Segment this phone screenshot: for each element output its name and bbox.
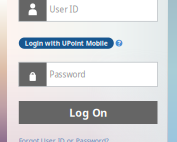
button[interactable]: Login with UPoint Mobile bbox=[19, 37, 114, 49]
staticText: User ID bbox=[50, 4, 79, 15]
staticText: Log On bbox=[69, 105, 107, 120]
staticText: Password bbox=[50, 69, 86, 80]
button[interactable]: Forgot User ID or Password? bbox=[19, 137, 109, 142]
button[interactable]: Log On bbox=[19, 101, 157, 124]
staticText: Login with UPoint Mobile bbox=[25, 39, 108, 48]
staticText: Forgot User ID or Password? bbox=[19, 137, 109, 142]
button[interactable]: Help bbox=[116, 40, 122, 47]
staticText: ? bbox=[117, 39, 120, 48]
